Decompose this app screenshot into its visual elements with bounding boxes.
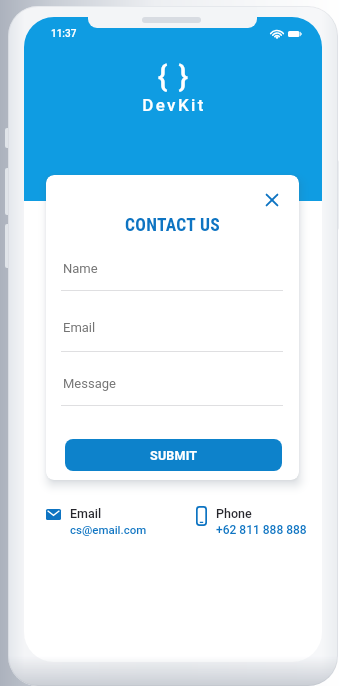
button[interactable]: SUBMIT bbox=[65, 439, 282, 471]
button[interactable] bbox=[260, 188, 284, 212]
staticText: cs@email.com bbox=[70, 523, 147, 536]
button[interactable]: Phone bbox=[196, 506, 307, 537]
staticText: Email bbox=[70, 506, 102, 521]
button[interactable]: Email bbox=[46, 506, 147, 536]
staticText: 11:37 bbox=[51, 28, 77, 40]
staticText: +62 811 888 888 bbox=[216, 523, 307, 537]
staticText: Name bbox=[63, 261, 98, 276]
staticText: DevKit bbox=[25, 95, 322, 115]
staticText: Phone bbox=[216, 506, 252, 521]
staticText: SUBMIT bbox=[150, 448, 198, 463]
staticText: { } bbox=[25, 60, 322, 94]
staticText: CONTACT US bbox=[46, 215, 299, 236]
staticText: Email bbox=[63, 320, 96, 335]
staticText: Message bbox=[63, 376, 116, 391]
